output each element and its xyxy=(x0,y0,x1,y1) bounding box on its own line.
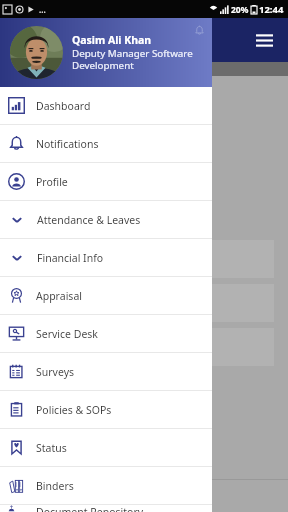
staticText: Notifications xyxy=(36,137,99,151)
staticText: Binders xyxy=(36,479,74,493)
staticText: Dashboard xyxy=(36,99,91,113)
staticText: Appraisal xyxy=(36,289,82,303)
staticText: Surveys xyxy=(36,365,75,379)
button[interactable]: Binders xyxy=(6,186,68,230)
button[interactable]: Financial Info xyxy=(0,239,212,276)
staticText: Binders xyxy=(22,218,53,230)
staticText: Financial Info xyxy=(37,251,104,265)
staticText: Profile xyxy=(36,175,68,189)
button[interactable]: Logout xyxy=(0,480,288,512)
button[interactable]: Notifications xyxy=(194,25,205,36)
button[interactable]: Dashboard xyxy=(0,87,212,124)
button[interactable]: Open navigation drawer xyxy=(248,24,280,56)
staticText: 12:44 xyxy=(259,3,284,16)
button[interactable]: Profile xyxy=(0,163,212,200)
button[interactable] xyxy=(4,240,274,278)
staticText: Document Repository xyxy=(36,505,144,512)
button[interactable]: Notifications xyxy=(0,125,212,162)
staticText: Doc Repo xyxy=(18,166,57,178)
button[interactable]: Appraisal xyxy=(0,277,212,314)
staticText: Service Desk xyxy=(36,327,98,341)
button[interactable]: Status xyxy=(0,429,212,466)
button[interactable] xyxy=(4,328,274,366)
staticText: Financial Info xyxy=(10,114,64,126)
button[interactable]: Qasim Ali Khan xyxy=(0,18,212,87)
button[interactable]: Service Desk xyxy=(0,315,212,352)
staticText: 20% xyxy=(231,4,249,16)
button[interactable] xyxy=(4,284,274,322)
button[interactable]: Binders xyxy=(0,467,212,504)
staticText: Status xyxy=(36,441,67,455)
button[interactable]: Doc Repo xyxy=(6,134,68,178)
button[interactable]: Attendance & Leaves xyxy=(0,201,212,238)
button[interactable]: Surveys xyxy=(0,353,212,390)
staticText: Qasim Ali Khan xyxy=(72,33,152,47)
staticText: Deputy Manager Software Development xyxy=(72,47,206,72)
button[interactable]: Document Repository xyxy=(0,505,212,512)
staticText: ... xyxy=(39,4,46,15)
staticText: Policies & SOPs xyxy=(36,403,112,417)
button[interactable]: Policies & SOPs xyxy=(0,391,212,428)
staticText: Attendance & Leaves xyxy=(37,213,141,227)
button[interactable]: Financial Info xyxy=(6,82,68,126)
